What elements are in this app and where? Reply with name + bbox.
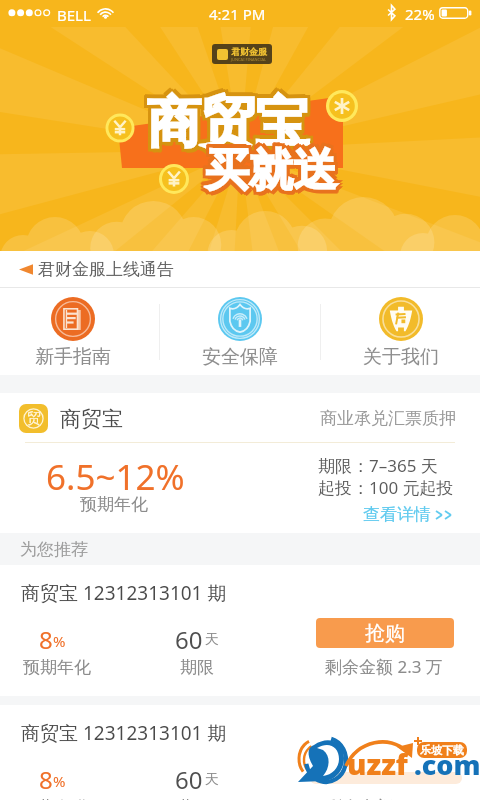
staticText: 起投：100 元起投 <box>318 476 454 499</box>
staticText: % <box>53 631 66 651</box>
staticText: 剩余金额 2.3 万 <box>325 655 443 678</box>
staticText: BELL <box>57 5 91 25</box>
staticText: 60 <box>175 763 203 796</box>
staticText: 预期年化 <box>23 657 91 678</box>
staticText: 天 <box>205 631 219 649</box>
staticText: 为您推荐 <box>20 539 88 560</box>
button[interactable]: 商贸宝 12312313101 期 <box>0 565 480 696</box>
staticText: 商业承兑汇票质押 <box>320 408 456 429</box>
staticText: 贸 <box>27 410 41 428</box>
staticText: 4:21 PM <box>209 4 266 24</box>
staticText: 剩余金额 2.3 万 <box>325 795 443 800</box>
staticText: 商贸宝 <box>60 406 123 432</box>
staticText: 商贸宝 <box>147 86 309 154</box>
staticText: 60 <box>175 623 203 656</box>
staticText: % <box>53 771 66 791</box>
staticText: 8 <box>39 623 53 656</box>
staticText: 期限 <box>180 797 214 800</box>
staticText: 商贸宝 <box>144 86 306 154</box>
staticText: 买就送 <box>208 140 340 195</box>
button[interactable]: 君财金服上线通告 <box>0 251 480 287</box>
staticText: 买就送 <box>205 143 337 198</box>
staticText: 商贸宝 <box>144 89 306 157</box>
staticText: 买就送 <box>208 146 340 201</box>
staticText: 君财金服上线通告 <box>38 259 174 280</box>
button[interactable]: 新手指南 <box>21 288 125 375</box>
staticText: 买就送 <box>207 147 339 202</box>
staticText: JUNCAI FINANCIAL <box>231 57 267 62</box>
staticText: 商贸宝 <box>144 92 306 160</box>
staticText: 6.5~12% <box>46 453 185 501</box>
staticText: 天 <box>205 771 219 789</box>
staticText: 期限 <box>180 657 214 678</box>
button[interactable]: 安全保障 <box>188 288 292 375</box>
staticText: 抢购 <box>365 761 405 786</box>
staticText: 新手指南 <box>35 345 111 369</box>
button[interactable]: 抢购 <box>316 758 454 788</box>
staticText: 关于我们 <box>363 345 439 369</box>
staticText: 商贸宝 <box>150 86 312 154</box>
staticText: 乐坡下载 <box>420 743 464 757</box>
staticText: 期限：7–365 天 <box>318 454 438 477</box>
staticText: 预期年化 <box>80 494 148 515</box>
button[interactable]: 查看详情 <box>363 504 453 525</box>
button[interactable]: 贸 <box>0 393 480 533</box>
staticText: 8 <box>39 763 53 796</box>
staticText: .com <box>414 746 480 783</box>
staticText: 22% <box>405 4 435 24</box>
staticText: 商贸宝 <box>150 92 312 160</box>
staticText: 买就送 <box>208 143 340 198</box>
button[interactable]: 抢购 <box>316 618 454 648</box>
staticText: 君财金服 <box>231 46 267 57</box>
staticText: 预期年化 <box>23 797 91 800</box>
staticText: 商贸宝 <box>147 89 309 157</box>
staticText: 买就送 <box>202 146 334 201</box>
staticText: 商贸宝 <box>145 85 307 153</box>
staticText: 商贸宝 <box>149 93 311 161</box>
staticText: 商贸宝 <box>150 89 312 157</box>
staticText: 买就送 <box>205 146 337 201</box>
staticText: uzzf <box>347 744 408 783</box>
staticText: 抢购 <box>365 621 405 646</box>
staticText: 商贸宝 12312313101 期 <box>21 720 227 746</box>
staticText: 安全保障 <box>202 345 278 369</box>
button[interactable]: 关于我们 <box>349 288 453 375</box>
staticText: 商贸宝 12312313101 期 <box>21 580 227 606</box>
staticText: 查看详情 <box>363 504 431 525</box>
staticText: 买就送 <box>205 140 337 195</box>
staticText: 商贸宝 <box>147 92 309 160</box>
staticText: 买就送 <box>203 139 335 194</box>
staticText: 买就送 <box>202 140 334 195</box>
staticText: 买就送 <box>202 143 334 198</box>
button[interactable]: 商贸宝 12312313101 期 <box>0 705 480 800</box>
